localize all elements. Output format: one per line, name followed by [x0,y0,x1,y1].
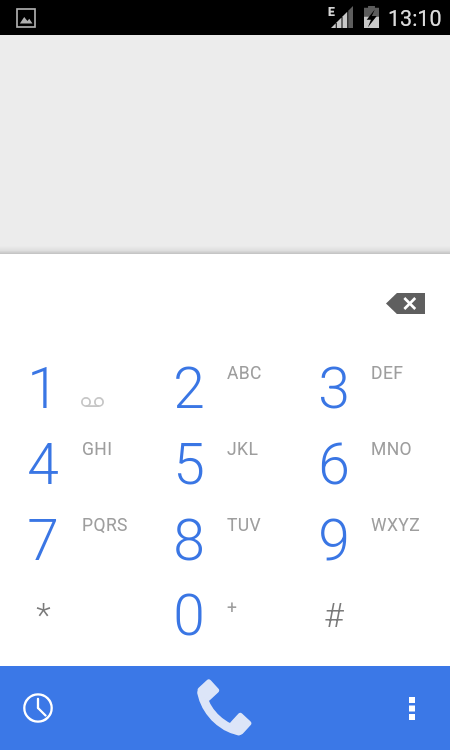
staticText: 1 [27,355,59,422]
button[interactable] [150,577,300,653]
staticText: TUV [227,515,262,536]
staticText: # [324,595,344,635]
staticText: 6 [318,431,350,498]
button[interactable] [300,577,450,653]
button[interactable] [0,577,150,653]
button[interactable] [300,425,450,501]
staticText: 4 [27,431,59,498]
button[interactable] [0,501,150,577]
staticText: 8 [173,507,205,574]
staticText: 5 [173,431,205,498]
button[interactable] [150,501,300,577]
staticText: 7 [27,507,59,574]
staticText: MNO [371,439,413,460]
button[interactable] [150,349,300,425]
staticText: WXYZ [371,515,421,536]
button[interactable]: Backspace [373,283,437,323]
staticText: ABC [227,363,262,384]
button[interactable] [300,501,450,577]
staticText: 3 [318,355,350,422]
button[interactable] [0,425,150,501]
button[interactable] [300,349,450,425]
staticText: GHI [82,439,113,460]
staticText: DEF [371,363,404,384]
staticText: E [328,5,335,19]
staticText: 2 [173,355,205,422]
staticText: * [36,595,51,635]
button[interactable]: Dial [185,668,265,748]
button[interactable]: More options [382,678,442,738]
staticText: 0 [173,582,205,649]
staticText: 9 [318,507,350,574]
button[interactable] [150,425,300,501]
staticText: 13:10 [388,6,442,31]
button[interactable] [0,349,150,425]
staticText: + [227,598,238,619]
staticText: JKL [227,439,259,460]
staticText: PQRS [82,515,128,536]
button[interactable]: Call history [8,678,68,738]
